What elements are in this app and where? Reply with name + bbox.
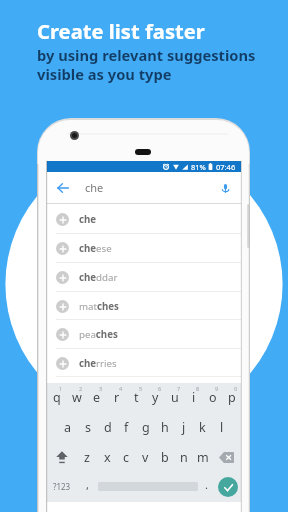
staticText: l — [220, 419, 224, 436]
button[interactable]: Back — [55, 180, 71, 196]
staticText: r — [114, 389, 120, 406]
staticText: z — [84, 449, 90, 466]
staticText: 3 — [99, 385, 103, 392]
staticText: cherries — [79, 357, 117, 370]
button[interactable]: 1 — [47, 382, 67, 412]
button[interactable]: s — [78, 412, 98, 442]
button[interactable]: 7 — [165, 382, 184, 412]
button[interactable]: d — [98, 412, 117, 442]
staticText: w — [72, 389, 82, 406]
button[interactable]: matches — [47, 292, 241, 320]
button[interactable]: cheddar — [47, 263, 241, 292]
button[interactable]: 0 — [222, 382, 241, 412]
staticText: 81% — [191, 162, 206, 172]
button[interactable]: x — [97, 442, 117, 472]
staticText: cheese — [79, 242, 112, 255]
staticText: s — [85, 419, 91, 436]
staticText: 9 — [215, 385, 219, 392]
staticText: a — [64, 419, 72, 436]
staticText: p — [228, 389, 236, 406]
staticText: b — [161, 449, 169, 466]
staticText: f — [124, 419, 129, 436]
button[interactable]: g — [136, 412, 155, 442]
staticText: o — [209, 389, 217, 406]
button[interactable]: z — [77, 442, 97, 472]
staticText: v — [142, 449, 149, 466]
button[interactable]: j — [174, 412, 193, 442]
button[interactable]: 2 — [67, 382, 87, 412]
staticText: 7 — [177, 385, 181, 392]
staticText: 07:46 — [216, 162, 236, 172]
staticText: c — [123, 449, 130, 466]
staticText: ?123 — [53, 481, 71, 492]
button[interactable]: Enter — [215, 472, 241, 501]
staticText: 8 — [196, 385, 200, 392]
staticText: 2 — [79, 385, 83, 392]
button[interactable]: m — [193, 442, 212, 472]
button[interactable]: peaches — [47, 320, 241, 349]
staticText: y — [152, 389, 159, 406]
button[interactable]: 6 — [146, 382, 165, 412]
staticText: i — [192, 389, 196, 406]
staticText: j — [182, 419, 186, 436]
staticText: h — [161, 419, 169, 436]
staticText: Create list faster — [37, 17, 205, 45]
button[interactable]: Voice search — [217, 180, 233, 196]
button[interactable]: cherries — [47, 349, 241, 377]
staticText: k — [199, 419, 206, 436]
button[interactable]: Backspace — [212, 442, 241, 472]
staticText: 4 — [119, 385, 123, 392]
staticText: peaches — [79, 328, 118, 341]
staticText: g — [142, 419, 150, 436]
button[interactable]: . — [198, 472, 215, 501]
button[interactable]: 8 — [184, 382, 203, 412]
staticText: x — [104, 449, 111, 466]
button[interactable]: f — [117, 412, 136, 442]
staticText: cheddar — [79, 271, 118, 284]
button[interactable]: b — [155, 442, 174, 472]
staticText: q — [53, 389, 61, 406]
button[interactable]: Shift — [47, 442, 77, 472]
staticText: . — [205, 477, 208, 492]
button[interactable]: 3 — [87, 382, 107, 412]
staticText: 0 — [234, 385, 238, 392]
staticText: e — [93, 389, 101, 406]
button[interactable]: l — [212, 412, 231, 442]
staticText: by using relevant suggestions visible as… — [37, 45, 256, 84]
staticText: che — [79, 213, 97, 226]
staticText: 1 — [59, 385, 63, 392]
button[interactable]: k — [193, 412, 212, 442]
staticText: m — [197, 449, 209, 466]
staticText: t — [134, 389, 139, 406]
staticText: 5 — [139, 385, 143, 392]
button[interactable]: che — [47, 204, 241, 234]
staticText: n — [180, 449, 188, 466]
button[interactable]: v — [136, 442, 155, 472]
staticText: , — [86, 477, 89, 492]
button[interactable]: , — [76, 472, 98, 501]
button[interactable]: a — [58, 412, 78, 442]
button[interactable]: cheese — [47, 234, 241, 263]
button[interactable]: 9 — [203, 382, 222, 412]
staticText: 6 — [158, 385, 162, 392]
staticText: u — [171, 389, 179, 406]
button[interactable]: h — [155, 412, 174, 442]
button[interactable]: 4 — [107, 382, 127, 412]
button[interactable]: ?123 — [47, 472, 76, 501]
button[interactable]: n — [174, 442, 193, 472]
staticText: d — [104, 419, 112, 436]
staticText: che — [85, 180, 104, 195]
staticText: matches — [79, 300, 119, 313]
button[interactable]: 5 — [127, 382, 146, 412]
button[interactable]: c — [117, 442, 136, 472]
